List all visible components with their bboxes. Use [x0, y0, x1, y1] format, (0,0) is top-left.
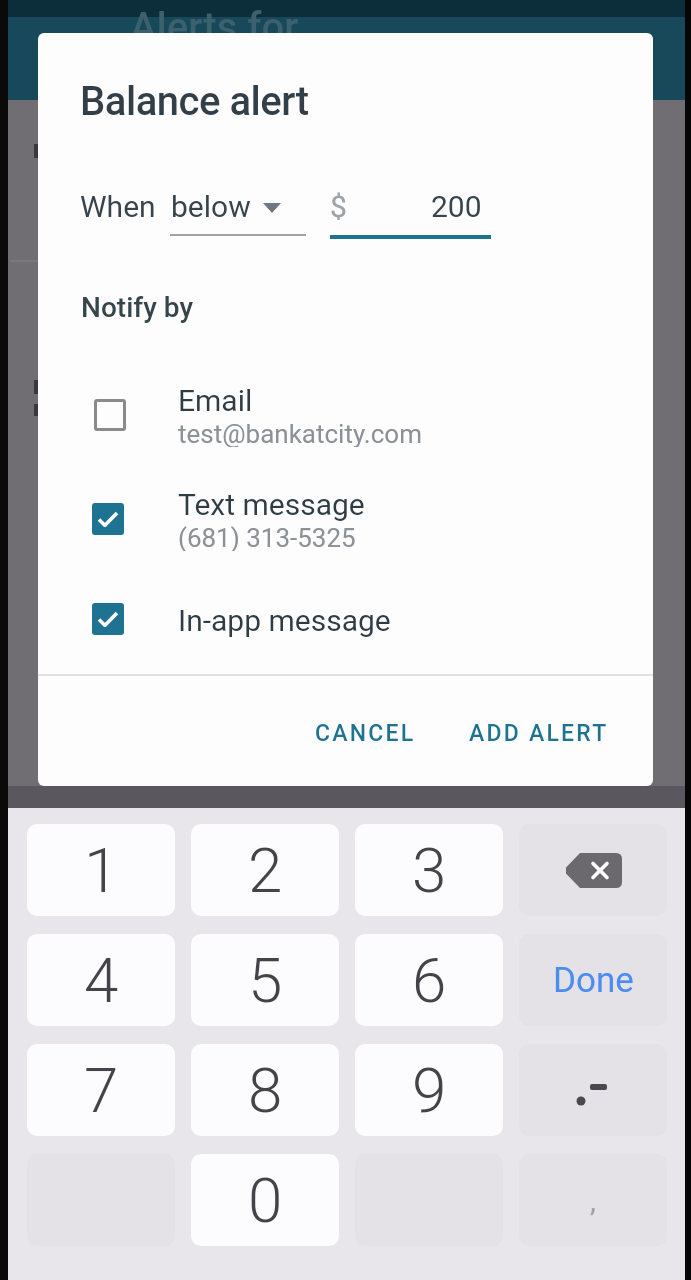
button[interactable]: Text message	[80, 487, 640, 553]
staticText: CANCEL	[315, 720, 416, 747]
staticText: Notify by	[81, 291, 194, 324]
button[interactable]	[519, 824, 667, 916]
staticText: 4	[84, 944, 119, 1017]
button[interactable]: 2	[191, 824, 339, 916]
staticText: $	[330, 189, 347, 224]
button[interactable]: 1	[27, 824, 175, 916]
staticText: 1	[84, 834, 119, 907]
button[interactable]: 9	[355, 1044, 503, 1136]
button[interactable]: Done	[519, 934, 667, 1026]
button[interactable]: Email	[80, 383, 640, 449]
staticText: 7	[84, 1054, 119, 1127]
staticText: Email	[178, 383, 253, 417]
button[interactable]: 3	[355, 824, 503, 916]
staticText: ,	[590, 1183, 596, 1218]
staticText: 2	[248, 834, 283, 907]
staticText: 5	[248, 944, 283, 1017]
staticText: ADD ALERT	[469, 720, 609, 747]
staticText: 9	[412, 1054, 447, 1127]
button[interactable]: 0	[191, 1154, 339, 1246]
button[interactable]: CANCEL	[300, 705, 430, 761]
button[interactable]: 7	[27, 1044, 175, 1136]
button[interactable]: 6	[355, 934, 503, 1026]
staticText: test@bankatcity.com	[178, 419, 422, 447]
button[interactable]	[519, 1044, 667, 1136]
staticText: Balance alert	[80, 78, 309, 120]
button[interactable]: 8	[191, 1044, 339, 1136]
staticText: 6	[412, 944, 447, 1017]
button[interactable]: ADD ALERT	[444, 705, 634, 761]
staticText: Text message	[178, 487, 365, 521]
staticText: In-app message	[178, 603, 391, 637]
staticText: Done	[553, 960, 634, 1001]
staticText: 200	[431, 189, 482, 224]
staticText: Alerts for	[130, 4, 299, 51]
staticText: 3	[412, 834, 447, 907]
button[interactable]: In-app message	[80, 587, 640, 653]
staticText: 8	[248, 1054, 283, 1127]
button[interactable]: 4	[27, 934, 175, 1026]
button[interactable]: 5	[191, 934, 339, 1026]
staticText: (681) 313-5325	[178, 523, 356, 551]
staticText: When	[80, 189, 156, 224]
staticText: 0	[248, 1164, 283, 1237]
staticText: below	[171, 189, 251, 224]
